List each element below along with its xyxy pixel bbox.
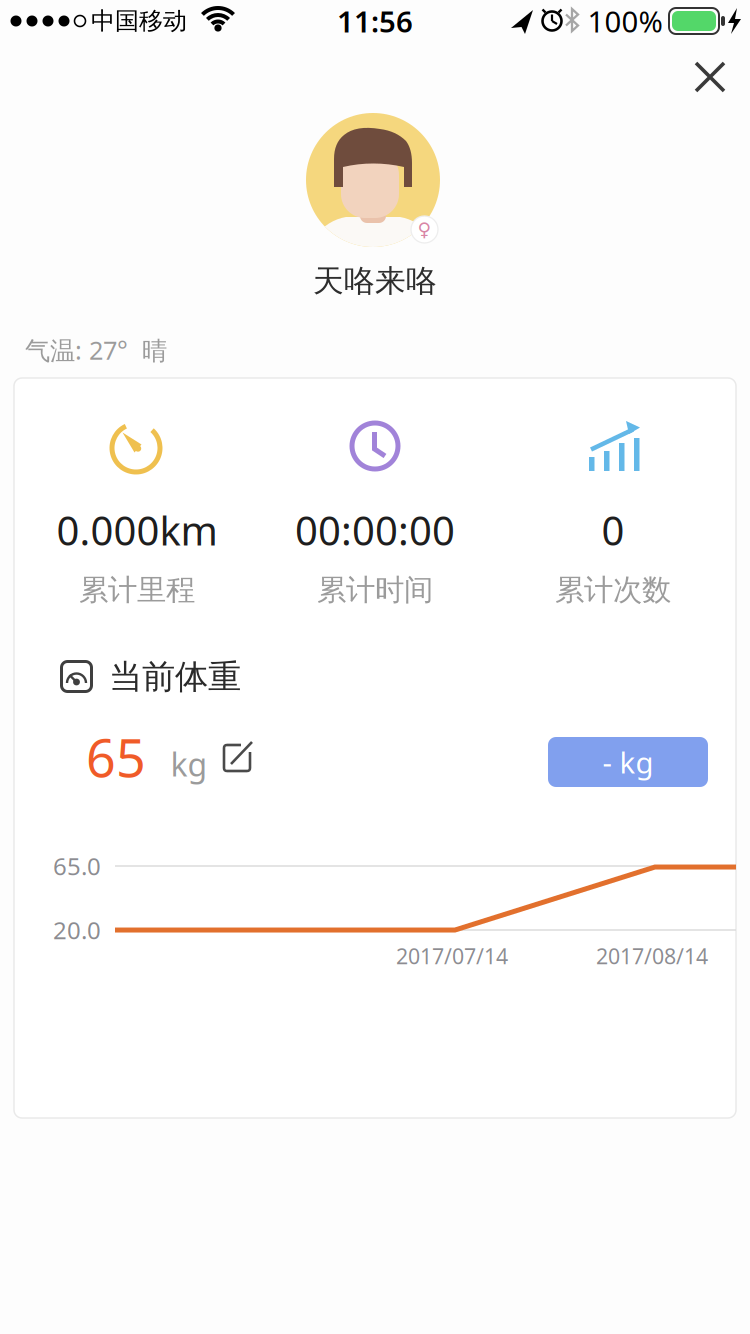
staticText: 累计里程 bbox=[79, 572, 195, 608]
staticText: - kg bbox=[602, 742, 653, 781]
staticText: 当前体重 bbox=[109, 656, 241, 697]
staticText: 中国移动 bbox=[91, 6, 187, 36]
staticText: 100% bbox=[587, 1, 662, 40]
staticText: 2017/08/14 bbox=[596, 942, 708, 970]
staticText: 20.0 bbox=[53, 914, 101, 946]
staticText: 累计时间 bbox=[317, 572, 433, 608]
button[interactable]: - kg bbox=[548, 737, 708, 787]
staticText: 65.0 bbox=[53, 850, 101, 882]
staticText: 累计次数 bbox=[555, 572, 671, 608]
staticText: 天咯来咯 bbox=[313, 262, 437, 300]
staticText: 00:00:00 bbox=[295, 503, 455, 556]
staticText: 2017/07/14 bbox=[396, 942, 508, 970]
staticText: 0.000km bbox=[56, 503, 217, 556]
staticText: ♀ bbox=[417, 219, 431, 240]
button[interactable]: 编辑体重 bbox=[221, 742, 255, 774]
staticText: 11:56 bbox=[337, 1, 413, 40]
staticText: 气温: 27° 晴 bbox=[25, 333, 167, 367]
button[interactable]: 关闭 bbox=[681, 48, 739, 106]
staticText: 0 bbox=[601, 503, 624, 556]
staticText: 65 bbox=[86, 722, 146, 792]
staticText: kg bbox=[170, 743, 207, 785]
